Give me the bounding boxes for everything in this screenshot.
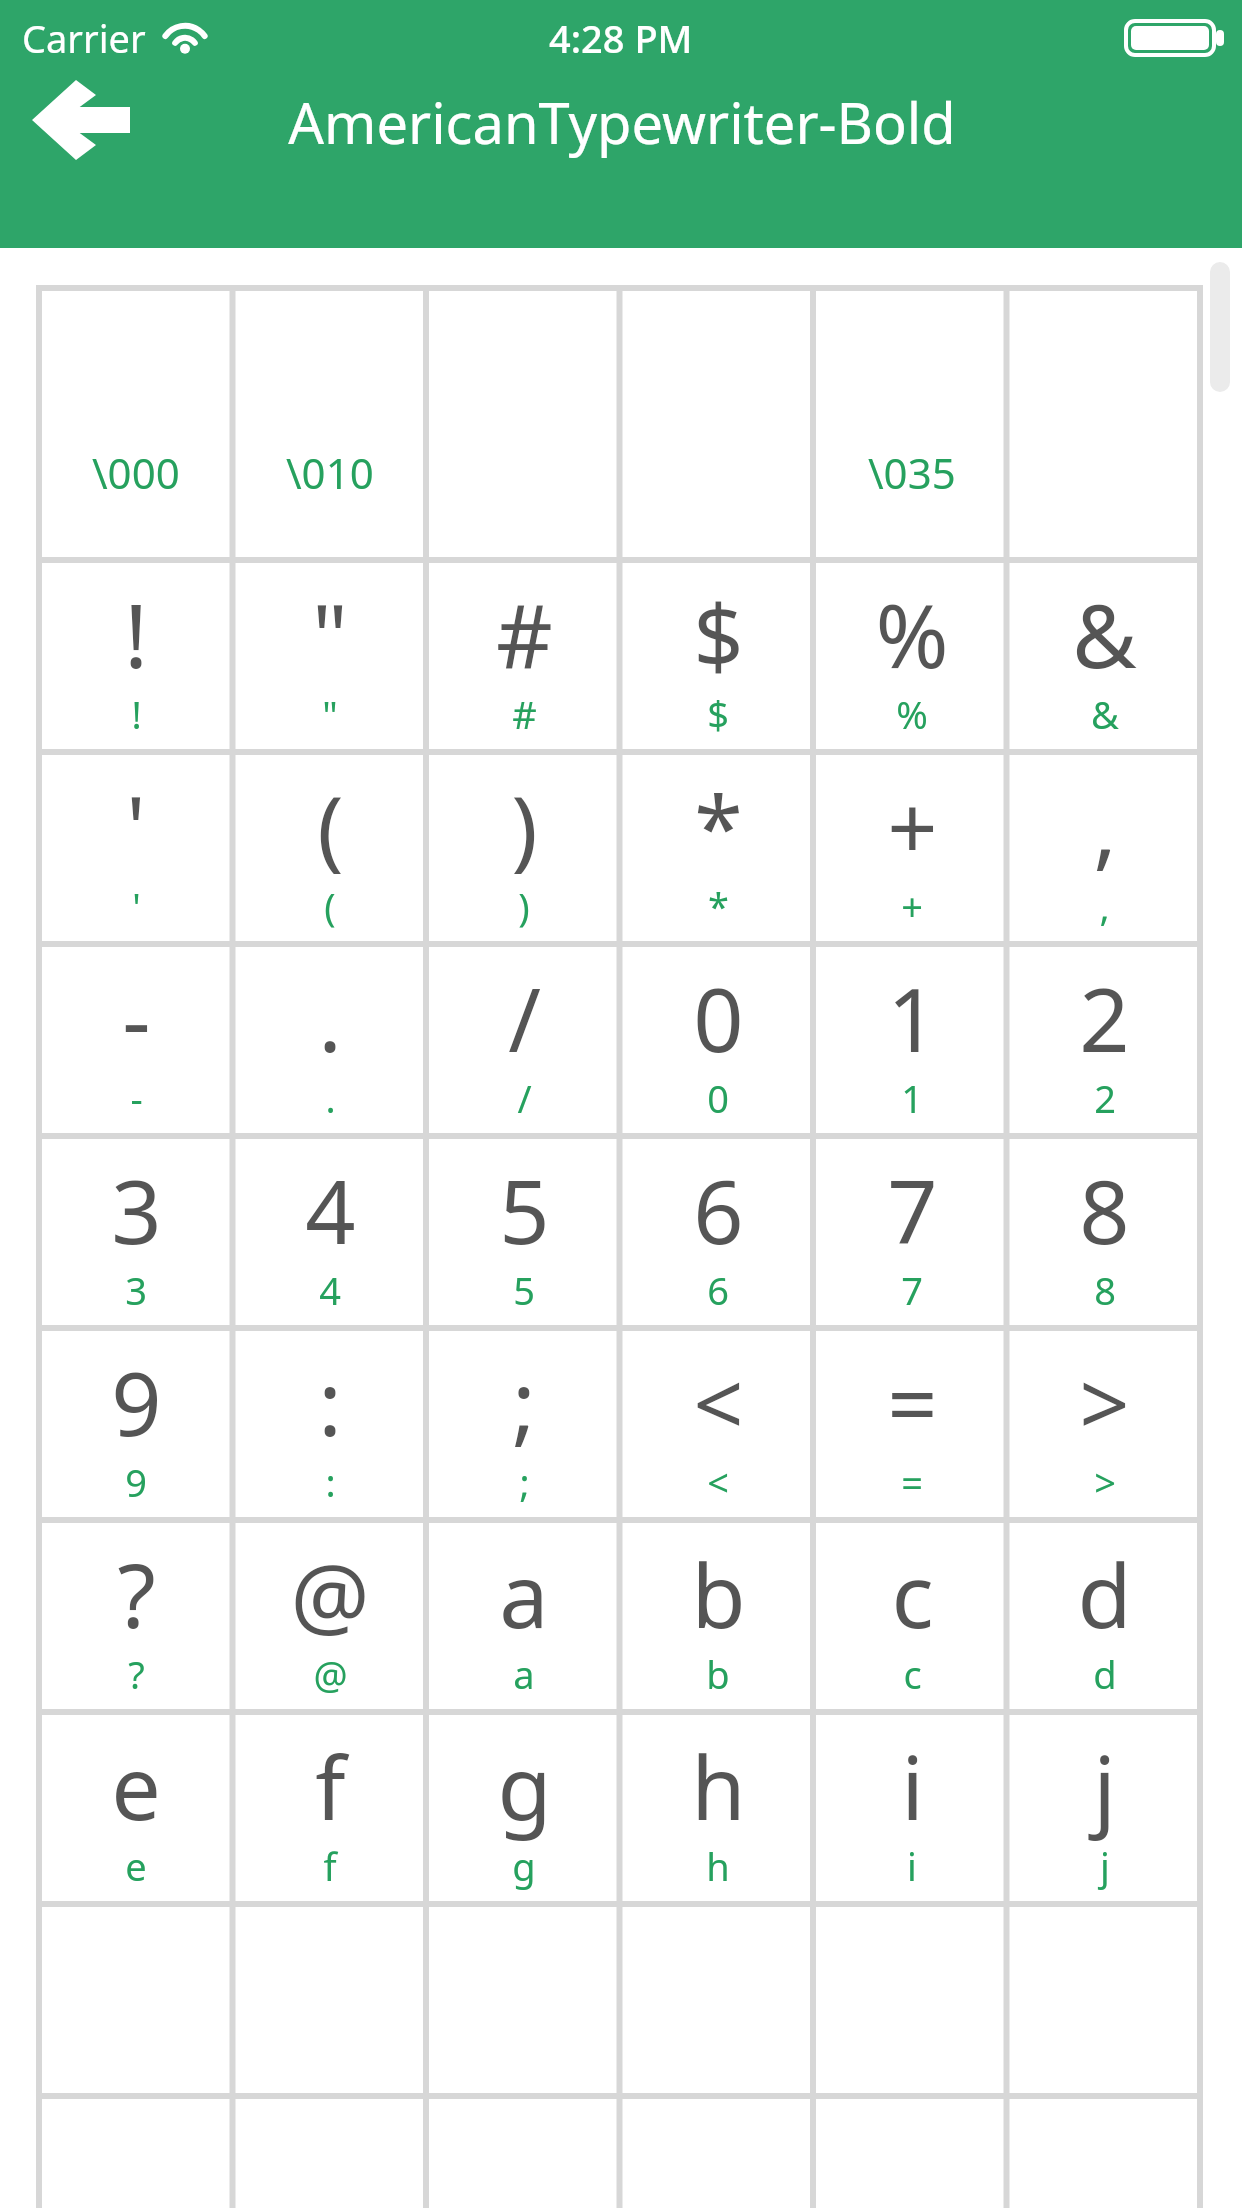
button[interactable]: . (233, 944, 427, 1136)
staticText: e (111, 1726, 161, 1846)
staticText: & (1091, 688, 1119, 740)
staticText: g (512, 1840, 536, 1892)
button[interactable]: Back (8, 62, 154, 178)
button[interactable]: ; (427, 1328, 621, 1520)
staticText: % (875, 574, 949, 694)
button[interactable]: : (233, 1328, 427, 1520)
staticText: 9 (125, 1456, 147, 1508)
staticText: ( (317, 766, 344, 886)
button[interactable]: * (621, 752, 815, 944)
button[interactable]: % (815, 560, 1009, 752)
staticText: # (496, 574, 553, 694)
staticText: - (122, 958, 151, 1078)
button[interactable]: @ (233, 1520, 427, 1712)
staticText: j (1100, 1840, 1110, 1892)
staticText: / (508, 958, 541, 1078)
button[interactable]: c (815, 1520, 1009, 1712)
button[interactable]: e (39, 1712, 233, 1904)
button[interactable]: 4 (233, 1136, 427, 1328)
staticText: ! (124, 574, 148, 694)
button[interactable]: < (621, 1328, 815, 1520)
button[interactable]: = (815, 1328, 1009, 1520)
button[interactable]: d (1009, 1520, 1200, 1712)
staticText: ? (128, 1648, 145, 1700)
staticText: < (707, 1456, 729, 1508)
staticText: b (691, 1534, 746, 1654)
staticText: , (1099, 880, 1110, 932)
button[interactable]: 6 (621, 1136, 815, 1328)
staticText: ) (511, 766, 538, 886)
button[interactable]: Scroll position (1210, 262, 1230, 392)
staticText: ( (324, 880, 336, 932)
button[interactable]: / (427, 944, 621, 1136)
staticText: - (130, 1072, 143, 1124)
staticText: j (1093, 1726, 1116, 1846)
staticText: . (318, 958, 342, 1078)
staticText: 1 (887, 958, 938, 1078)
staticText: * (708, 880, 729, 932)
button[interactable]: 7 (815, 1136, 1009, 1328)
staticText: 4 (305, 1150, 356, 1270)
button[interactable]: 8 (1009, 1136, 1200, 1328)
button[interactable]: f (233, 1712, 427, 1904)
button[interactable]: \010 (233, 288, 427, 560)
button[interactable]: 9 (39, 1328, 233, 1520)
button[interactable]: - (39, 944, 233, 1136)
button[interactable]: 5 (427, 1136, 621, 1328)
staticText: i (907, 1840, 917, 1892)
button[interactable]: ! (39, 560, 233, 752)
staticText: i (901, 1726, 924, 1846)
staticText: h (691, 1726, 746, 1846)
button[interactable]: & (1009, 560, 1200, 752)
button[interactable]: 3 (39, 1136, 233, 1328)
staticText: 5 (513, 1264, 535, 1316)
button[interactable]: b (621, 1520, 815, 1712)
staticText: : (318, 1342, 342, 1462)
button[interactable]: > (1009, 1328, 1200, 1520)
button[interactable]: i (815, 1712, 1009, 1904)
button[interactable]: $ (621, 560, 815, 752)
staticText: ' (132, 880, 141, 932)
staticText: < (693, 1342, 744, 1462)
button[interactable]: + (815, 752, 1009, 944)
button[interactable]: \000 (39, 288, 233, 560)
button[interactable] (427, 288, 621, 560)
staticText: d (1077, 1534, 1132, 1654)
button[interactable]: 2 (1009, 944, 1200, 1136)
button[interactable]: " (233, 560, 427, 752)
staticText: & (1072, 574, 1137, 694)
staticText: . (325, 1072, 336, 1124)
staticText: 1 (901, 1072, 923, 1124)
button[interactable]: g (427, 1712, 621, 1904)
button[interactable] (621, 288, 815, 560)
staticText: g (497, 1726, 552, 1846)
button[interactable] (1009, 288, 1200, 560)
button[interactable]: ) (427, 752, 621, 944)
staticText: ? (117, 1534, 156, 1654)
staticText: : (325, 1456, 336, 1508)
button[interactable]: \035 (815, 288, 1009, 560)
button[interactable]: a (427, 1520, 621, 1712)
staticText: c (891, 1534, 934, 1654)
staticText: Carrier (22, 12, 146, 64)
staticText: > (1079, 1342, 1130, 1462)
button[interactable]: j (1009, 1712, 1200, 1904)
button[interactable]: ? (39, 1520, 233, 1712)
staticText: \000 (92, 444, 180, 501)
staticText: 0 (707, 1072, 729, 1124)
button[interactable]: ( (233, 752, 427, 944)
button[interactable]: 1 (815, 944, 1009, 1136)
staticText: % (896, 688, 928, 740)
button[interactable]: h (621, 1712, 815, 1904)
button[interactable]: # (427, 560, 621, 752)
staticText: ' (126, 766, 146, 886)
button[interactable]: ' (39, 752, 233, 944)
staticText: 6 (693, 1150, 744, 1270)
staticText: = (901, 1456, 923, 1508)
button[interactable]: , (1009, 752, 1200, 944)
staticText: AmericanTypewriter-Bold (162, 84, 1082, 160)
staticText: a (499, 1534, 549, 1654)
button[interactable]: 0 (621, 944, 815, 1136)
staticText: @ (290, 1534, 370, 1654)
staticText: f (323, 1840, 337, 1892)
